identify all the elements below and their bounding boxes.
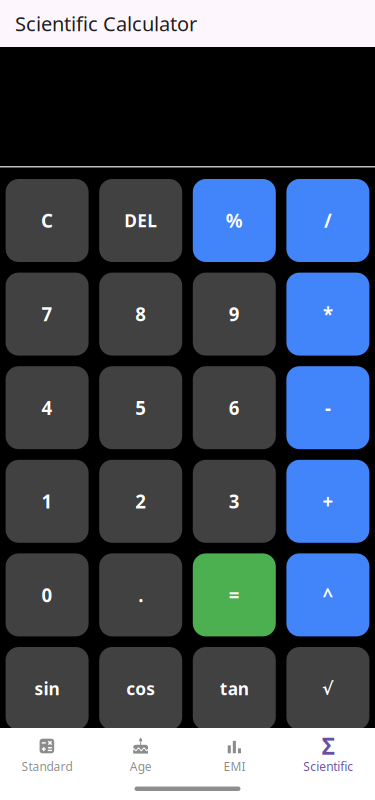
button[interactable]: 3 [193,460,276,543]
staticText: / [324,208,332,233]
button[interactable]: sin [6,647,89,730]
button[interactable]: Standard [0,728,94,778]
staticText: EMI [223,758,245,774]
staticText: 1 [42,489,53,514]
staticText: Σ [322,731,335,761]
button[interactable]: % [193,179,276,262]
staticText: 4 [42,395,53,420]
staticText: % [226,208,243,233]
staticText: Age [130,758,152,774]
staticText: 2 [135,489,146,514]
button[interactable]: C [6,179,89,262]
staticText: 9 [229,302,240,326]
staticText: - [325,395,331,420]
button[interactable]: cos [99,647,182,730]
button[interactable]: 1 [6,460,89,543]
staticText: 5 [135,395,146,420]
button[interactable]: ^ [286,553,369,636]
button[interactable]: Σ [281,728,375,778]
staticText: DEL [124,209,157,232]
staticText: sin [35,677,60,700]
button[interactable]: - [286,366,369,449]
button[interactable]: tan [193,647,276,730]
staticText: √ [322,679,334,698]
button[interactable]: 7 [6,273,89,356]
button[interactable]: DEL [99,179,182,262]
button[interactable]: 9 [193,273,276,356]
button[interactable]: / [286,179,369,262]
staticText: Standard [21,758,72,774]
staticText: 8 [135,302,146,326]
button[interactable]: = [193,553,276,636]
staticText: tan [220,677,249,700]
staticText: * [323,302,333,326]
button[interactable]: 2 [99,460,182,543]
staticText: = [229,582,240,607]
staticText: Scientific [303,758,353,774]
button[interactable]: + [286,460,369,543]
staticText: 7 [42,302,53,326]
staticText: 3 [229,489,240,514]
button[interactable]: 0 [6,553,89,636]
staticText: cos [126,677,155,700]
staticText: C [41,208,53,233]
button[interactable]: 5 [99,366,182,449]
staticText: . [138,582,143,607]
button[interactable]: 8 [99,273,182,356]
staticText: 6 [229,395,240,420]
staticText: + [322,489,333,514]
staticText: 0 [42,582,53,607]
button[interactable]: EMI [187,728,281,778]
button[interactable]: 4 [6,366,89,449]
button[interactable]: * [286,273,369,356]
button[interactable]: . [99,553,182,636]
staticText: ^ [322,582,333,607]
button[interactable]: 6 [193,366,276,449]
staticText: Scientific Calculator [15,10,197,37]
button[interactable]: √ [286,647,369,730]
button[interactable]: Age [94,728,188,778]
